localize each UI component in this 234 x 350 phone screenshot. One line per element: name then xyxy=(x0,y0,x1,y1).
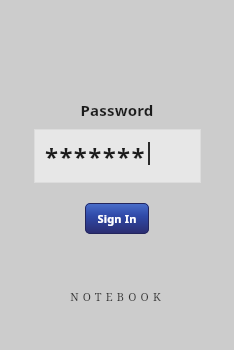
button[interactable]: NOTEBOOK xyxy=(64,286,171,307)
button[interactable]: Sign In xyxy=(85,203,149,234)
staticText: Password xyxy=(80,100,154,120)
button[interactable]: Password input field xyxy=(34,129,201,183)
staticText: Sign In xyxy=(97,211,137,226)
staticText: ******* xyxy=(45,140,146,173)
